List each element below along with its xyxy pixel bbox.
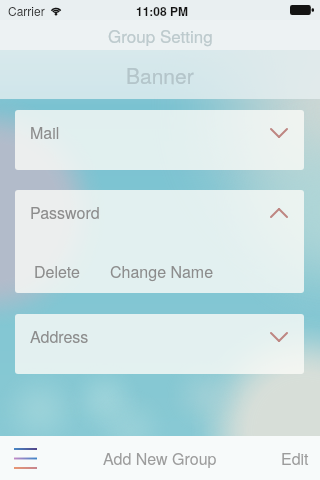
staticText: Address (30, 325, 89, 348)
staticText: Change Name (110, 260, 214, 283)
button[interactable]: Password (15, 190, 304, 235)
button[interactable]: Address (15, 314, 304, 359)
staticText: Carrier (8, 2, 45, 19)
button[interactable]: Add New Group (103, 447, 217, 470)
button[interactable]: Delete (34, 260, 80, 283)
staticText: Mail (30, 121, 60, 144)
button[interactable]: Mail (15, 110, 304, 155)
staticText: Banner (126, 60, 194, 90)
button[interactable]: Menu (0, 436, 50, 480)
staticText: 11:08 PM (136, 2, 189, 19)
button[interactable]: Edit (281, 447, 309, 470)
staticText: Group Setting (108, 23, 213, 47)
staticText: Delete (34, 260, 80, 283)
staticText: Password (30, 201, 100, 224)
staticText: Edit (281, 447, 309, 470)
button[interactable]: Change Name (110, 260, 214, 283)
staticText: Add New Group (103, 447, 217, 470)
